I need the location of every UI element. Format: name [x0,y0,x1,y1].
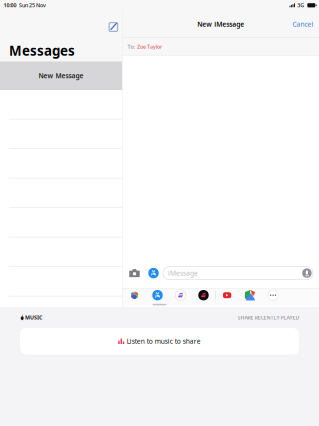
staticText: Listen to music to share [127,337,201,346]
button[interactable]: Cancel [286,11,319,38]
staticText: To: [127,43,134,50]
button[interactable]: Music [169,289,192,301]
staticText: SHARE RECENTLY PLAYED [237,314,299,321]
button[interactable]: Camera [125,260,144,286]
button[interactable]: More apps [262,289,285,301]
button[interactable]: App Store [146,289,169,301]
button[interactable]: YouTube [216,289,239,301]
button[interactable]: To: [122,38,319,55]
button[interactable]: Photos [123,289,146,301]
staticText: 3G [297,2,304,9]
button[interactable]: App Store apps [144,260,163,286]
button[interactable]: New Message [106,10,120,33]
button[interactable]: New Message [0,61,122,90]
staticText: Cancel [292,20,313,29]
staticText: iMessage [168,269,198,278]
button[interactable]: Apple Music [192,289,215,301]
staticText: New Message [38,71,83,80]
staticText: Zoe Taylor [137,43,162,50]
button[interactable]: Listen to music to share [20,328,299,354]
staticText: Messages [9,42,75,59]
staticText: New iMessage [197,20,244,29]
button[interactable]: Maps [239,289,262,301]
staticText: Sun 25 Nov [19,2,46,9]
staticText: 10:00 [3,2,16,9]
staticText: MUSIC [25,314,42,321]
